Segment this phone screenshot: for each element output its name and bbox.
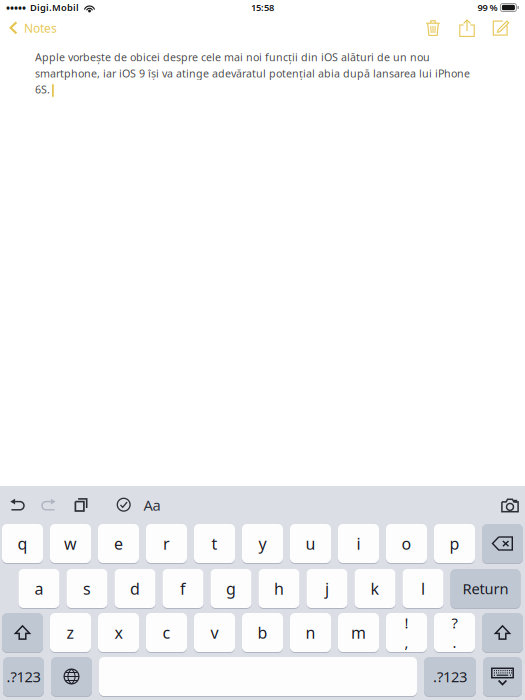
button[interactable]: n [290, 613, 331, 653]
staticText: x [114, 622, 122, 643]
button[interactable]: u [290, 524, 331, 564]
staticText: k [370, 578, 379, 599]
staticText: y [258, 533, 266, 554]
button[interactable]: g [210, 569, 251, 609]
staticText: c [162, 622, 170, 643]
button[interactable]: e [98, 524, 139, 564]
button[interactable]: Compose [484, 15, 518, 41]
button[interactable]: o [386, 524, 427, 564]
staticText: q [17, 533, 27, 554]
button[interactable]: t [194, 524, 235, 564]
staticText: .?123 [6, 667, 40, 686]
staticText: Aa [143, 495, 160, 515]
staticText: ••••• [6, 0, 26, 15]
staticText: 15:58 [251, 1, 274, 14]
staticText: d [130, 578, 140, 599]
button[interactable]: y [242, 524, 283, 564]
staticText: w [64, 533, 77, 554]
button[interactable]: x [98, 613, 139, 653]
staticText: v [210, 622, 218, 643]
button[interactable]: z [50, 613, 91, 653]
staticText: i [356, 533, 360, 554]
button[interactable]: .?123 [3, 657, 44, 697]
button[interactable]: d [114, 569, 155, 609]
button[interactable]: .?123 [424, 657, 476, 697]
button[interactable]: Notes [0, 15, 65, 41]
staticText: e [114, 533, 123, 554]
button[interactable]: m [338, 613, 379, 653]
staticText: g [226, 578, 236, 599]
button[interactable]: Paste [65, 489, 97, 521]
staticText: o [401, 533, 411, 554]
button[interactable]: Undo [1, 489, 33, 521]
button[interactable]: Delete [416, 15, 450, 41]
button[interactable]: r [146, 524, 187, 564]
button[interactable]: Camera [495, 489, 525, 521]
staticText: .?123 [433, 667, 467, 686]
button[interactable]: b [242, 613, 283, 653]
staticText: . [452, 632, 456, 652]
button[interactable]: Text format [138, 489, 166, 521]
staticText: b [257, 622, 267, 643]
staticText: j [325, 578, 329, 599]
button[interactable]: space [99, 657, 417, 697]
button[interactable]: l [402, 569, 443, 609]
staticText: t [211, 533, 217, 554]
staticText: Digi.Mobil [30, 1, 79, 14]
staticText: n [305, 622, 315, 643]
staticText: u [305, 533, 315, 554]
staticText: 99 % [477, 1, 497, 14]
button[interactable]: j [306, 569, 347, 609]
button[interactable]: Share [450, 15, 484, 41]
staticText: h [274, 578, 284, 599]
staticText: r [163, 533, 170, 554]
button[interactable]: ! [386, 613, 427, 653]
button[interactable]: Done [110, 489, 138, 521]
staticText: m [351, 622, 366, 643]
staticText: s [83, 578, 91, 599]
staticText: ! [404, 613, 408, 632]
button[interactable]: i [338, 524, 379, 564]
button[interactable]: Return [450, 569, 520, 609]
button[interactable]: ? [434, 613, 475, 653]
button[interactable]: Delete [482, 524, 523, 564]
staticText: l [421, 578, 425, 599]
button[interactable]: q [2, 524, 43, 564]
staticText: f [180, 578, 186, 599]
staticText: Return [462, 579, 508, 598]
button[interactable]: v [194, 613, 235, 653]
button[interactable]: f [162, 569, 203, 609]
button[interactable]: Shift [2, 613, 43, 653]
button[interactable]: s [66, 569, 107, 609]
button[interactable]: Shift [482, 613, 523, 653]
button[interactable]: p [434, 524, 475, 564]
button[interactable]: w [50, 524, 91, 564]
button[interactable]: Next keyboard [51, 657, 92, 697]
staticText: z [66, 622, 74, 643]
staticText: Apple vorbește de obicei despre cele mai… [35, 50, 470, 96]
button[interactable]: h [258, 569, 299, 609]
button[interactable]: Hide keyboard [483, 657, 522, 697]
staticText: , [404, 632, 408, 652]
staticText: a [34, 578, 43, 599]
button[interactable]: a [18, 569, 59, 609]
staticText: p [449, 533, 459, 554]
staticText: ? [451, 613, 457, 632]
staticText: Notes [24, 20, 57, 36]
button[interactable]: Redo [33, 489, 65, 521]
button[interactable]: c [146, 613, 187, 653]
button[interactable]: k [354, 569, 395, 609]
